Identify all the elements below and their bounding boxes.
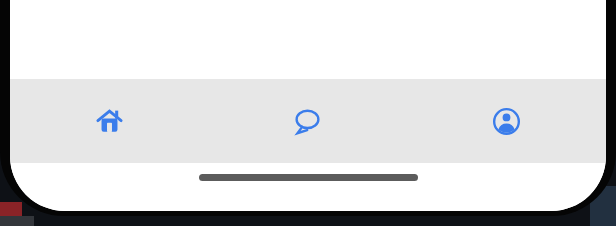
- button[interactable]: Messages: [208, 79, 407, 163]
- button[interactable]: Home gesture bar: [199, 174, 418, 181]
- button[interactable]: Home: [10, 79, 208, 163]
- button[interactable]: Account: [407, 79, 606, 163]
